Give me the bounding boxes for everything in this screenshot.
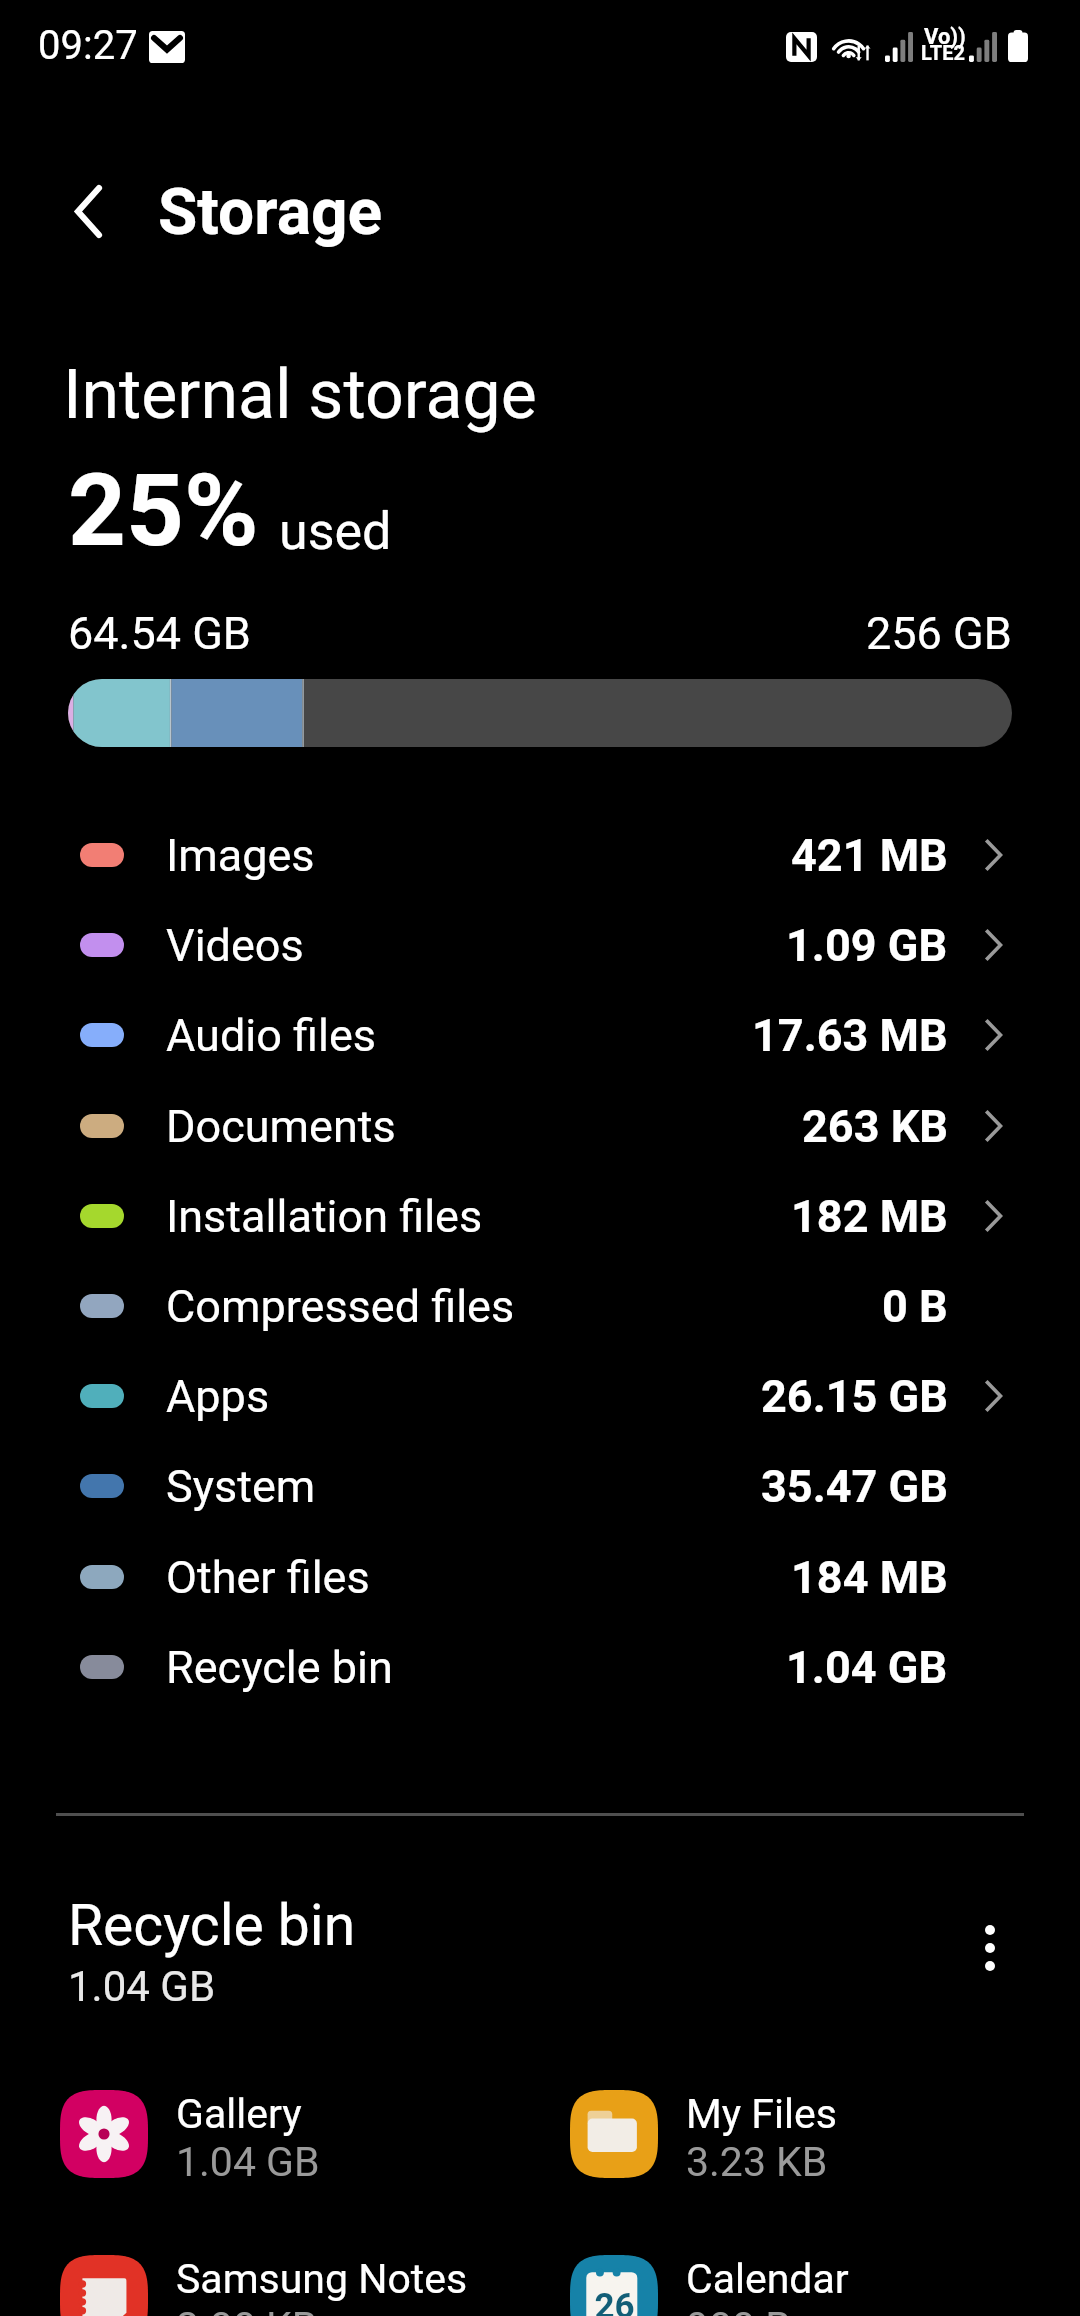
button[interactable]: Installation files [0,1171,1080,1261]
button[interactable]: Samsung Notes [60,2255,510,2316]
staticText: Storage [158,175,383,250]
staticText: 900 B [686,2303,791,2316]
button[interactable]: Back [38,161,138,261]
staticText: 184 MB [791,1551,948,1604]
button[interactable]: My Files [570,2090,1020,2178]
staticText: Gallery [176,2090,302,2138]
staticText: Internal storage [63,355,537,435]
button[interactable]: Videos [0,900,1080,990]
staticText: Installation files [166,1190,483,1243]
staticText: Apps [166,1370,270,1423]
staticText: LTE2 [921,41,965,64]
staticText: 3.23 KB [686,2138,828,2178]
button[interactable]: Documents [0,1081,1080,1171]
button[interactable]: 26 [570,2255,1020,2316]
staticText: Other files [166,1551,370,1604]
button[interactable]: More options [945,1903,1035,1993]
staticText: Images [166,829,315,882]
staticText: 17.63 MB [752,1009,948,1062]
staticText: System [166,1460,316,1513]
staticText: 1.04 GB [68,1962,216,2011]
button[interactable]: Gallery [60,2090,510,2178]
staticText: 263 KB [802,1100,948,1153]
staticText: Compressed files [166,1280,515,1333]
staticText: 1.04 GB [176,2138,320,2178]
button[interactable]: Apps [0,1351,1080,1441]
staticText: 09:27 [38,22,138,69]
staticText: 256 GB [866,607,1012,660]
staticText: Vo)) [924,24,966,50]
staticText: 26 [594,2286,635,2316]
button[interactable]: Other files [0,1532,1080,1622]
staticText: Videos [166,919,304,972]
staticText: My Files [686,2090,837,2138]
staticText: 2.00 KB [176,2303,318,2316]
staticText: 26.15 GB [761,1370,948,1423]
staticText: Documents [166,1100,396,1153]
staticText: Audio files [166,1009,377,1062]
button[interactable]: Images [0,810,1080,900]
staticText: 25% [68,451,259,569]
button[interactable]: Audio files [0,990,1080,1080]
staticText: Calendar [686,2255,849,2303]
staticText: 35.47 GB [761,1460,948,1513]
staticText: Recycle bin [68,1892,356,1959]
staticText: Samsung Notes [176,2255,468,2303]
button[interactable]: Compressed files [0,1261,1080,1351]
staticText: 1.09 GB [786,919,948,972]
staticText: Recycle bin [166,1641,393,1694]
staticText: 421 MB [791,829,948,882]
staticText: 1.04 GB [786,1641,948,1694]
button[interactable]: System [0,1441,1080,1531]
staticText: 64.54 GB [68,607,251,660]
button[interactable]: Recycle bin [0,1622,1080,1712]
staticText: used [279,501,392,562]
staticText: 182 MB [791,1190,948,1243]
staticText: 0 B [882,1280,948,1333]
